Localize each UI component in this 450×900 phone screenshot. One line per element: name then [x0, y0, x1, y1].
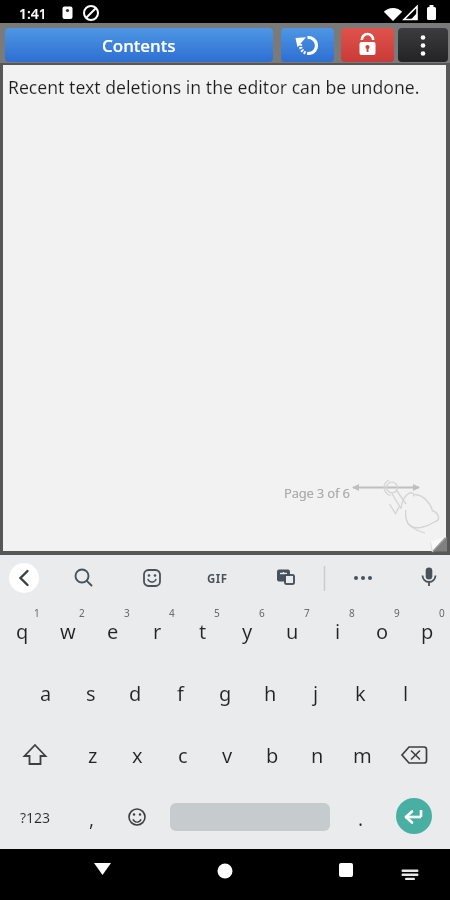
staticText: o: [376, 618, 389, 645]
button[interactable]: b: [250, 724, 295, 786]
button[interactable]: [341, 557, 385, 599]
staticText: b: [266, 742, 279, 769]
staticText: Recent text deletions in the editor can …: [8, 75, 420, 99]
button[interactable]: [0, 724, 70, 786]
staticText: GIF: [207, 571, 228, 587]
button[interactable]: l: [383, 662, 428, 724]
staticText: 7: [304, 606, 310, 620]
staticText: j: [313, 680, 319, 707]
button[interactable]: [396, 798, 432, 834]
button[interactable]: ?123: [0, 786, 70, 848]
staticText: 0: [439, 606, 445, 620]
button[interactable]: [9, 563, 39, 593]
staticText: s: [86, 680, 96, 707]
staticText: n: [311, 742, 324, 769]
staticText: z: [88, 742, 98, 769]
button[interactable]: [73, 845, 133, 900]
button[interactable]: [340, 786, 385, 848]
staticText: w: [60, 618, 76, 645]
staticText: f: [177, 680, 184, 707]
button[interactable]: n: [295, 724, 340, 786]
button[interactable]: k: [338, 662, 383, 724]
staticText: i: [335, 618, 341, 645]
button[interactable]: [160, 786, 340, 848]
button[interactable]: Contents: [5, 28, 273, 62]
staticText: u: [286, 618, 299, 645]
button[interactable]: [281, 28, 334, 62]
staticText: c: [178, 742, 188, 769]
staticText: 5: [214, 606, 220, 620]
button[interactable]: [61, 557, 105, 599]
button[interactable]: q: [0, 600, 45, 662]
button[interactable]: [380, 724, 450, 786]
staticText: 6: [259, 606, 265, 620]
staticText: e: [107, 618, 119, 645]
button[interactable]: h: [248, 662, 293, 724]
button[interactable]: u: [270, 600, 315, 662]
staticText: a: [40, 680, 52, 707]
staticText: 4: [169, 606, 175, 620]
button[interactable]: p: [405, 600, 450, 662]
staticText: 9: [394, 606, 400, 620]
button[interactable]: [130, 557, 174, 599]
button[interactable]: d: [113, 662, 158, 724]
staticText: m: [353, 742, 372, 769]
staticText: q: [16, 618, 29, 645]
staticText: r: [153, 618, 162, 645]
button[interactable]: r: [135, 600, 180, 662]
button[interactable]: [316, 845, 376, 900]
button[interactable]: x: [115, 724, 160, 786]
staticText: 2: [79, 606, 85, 620]
button[interactable]: [407, 557, 450, 599]
button[interactable]: t: [180, 600, 225, 662]
staticText: v: [222, 742, 233, 769]
button[interactable]: g: [203, 662, 248, 724]
button[interactable]: c: [160, 724, 205, 786]
button[interactable]: e: [90, 600, 135, 662]
button[interactable]: o: [360, 600, 405, 662]
staticText: k: [355, 680, 366, 707]
staticText: Page 3 of 6: [284, 484, 350, 502]
staticText: 8: [349, 606, 355, 620]
button[interactable]: i: [315, 600, 360, 662]
staticText: y: [242, 618, 253, 645]
staticText: ?123: [20, 808, 51, 827]
button[interactable]: [341, 28, 394, 62]
staticText: 3: [124, 606, 130, 620]
staticText: x: [132, 742, 143, 769]
button[interactable]: [195, 845, 255, 900]
button[interactable]: z: [70, 724, 115, 786]
button[interactable]: m: [340, 724, 385, 786]
staticText: ,: [89, 806, 95, 832]
button[interactable]: [70, 786, 115, 848]
button[interactable]: [115, 786, 160, 848]
button[interactable]: a: [23, 662, 68, 724]
button[interactable]: f: [158, 662, 203, 724]
staticText: h: [264, 680, 277, 707]
button[interactable]: s: [68, 662, 113, 724]
staticText: p: [421, 618, 434, 645]
staticText: t: [199, 618, 207, 645]
staticText: Contents: [102, 34, 176, 57]
staticText: g: [219, 680, 232, 707]
staticText: d: [129, 680, 142, 707]
staticText: .: [358, 806, 364, 832]
button[interactable]: y: [225, 600, 270, 662]
button[interactable]: j: [293, 662, 338, 724]
button[interactable]: w: [45, 600, 90, 662]
staticText: l: [403, 680, 409, 707]
staticText: 1: [34, 606, 40, 620]
button[interactable]: [263, 557, 307, 599]
button[interactable]: v: [205, 724, 250, 786]
staticText: 1:41: [19, 4, 47, 23]
button[interactable]: [398, 28, 448, 62]
button[interactable]: [196, 557, 240, 599]
